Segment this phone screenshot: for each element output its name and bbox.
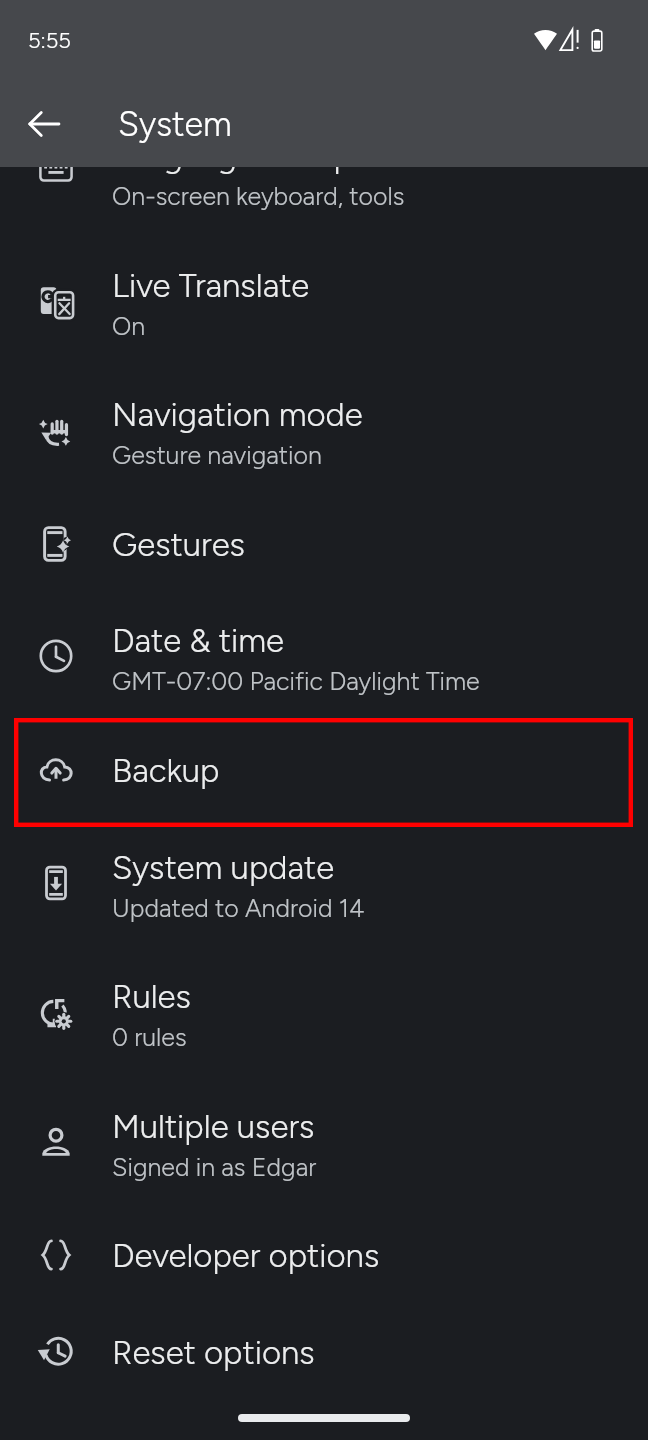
staticText: System update: [112, 846, 335, 888]
staticText: Rules: [112, 975, 191, 1017]
staticText: GMT-07:00 Pacific Daylight Time: [112, 664, 480, 697]
button[interactable]: Backup: [0, 721, 648, 818]
staticText: Updated to Android 14: [112, 891, 365, 924]
button[interactable]: Navigation mode: [0, 365, 648, 495]
staticText: System: [118, 104, 232, 145]
button[interactable]: Developer options: [0, 1206, 648, 1303]
staticText: Reset options: [112, 1331, 315, 1373]
staticText: Developer options: [112, 1234, 380, 1276]
staticText: Gesture navigation: [112, 438, 322, 471]
button[interactable]: Gestures: [0, 495, 648, 592]
staticText: On-screen keyboard, tools: [112, 179, 405, 212]
button[interactable]: Multiple users: [0, 1077, 648, 1207]
button[interactable]: System update: [0, 818, 648, 948]
staticText: Backup: [112, 749, 220, 791]
button[interactable]: Reset options: [0, 1303, 648, 1400]
staticText: On: [112, 309, 146, 342]
staticText: Signed in as Edgar: [112, 1150, 317, 1183]
button[interactable]: Back: [14, 94, 74, 154]
staticText: Navigation mode: [112, 393, 363, 435]
staticText: Date & time: [112, 619, 284, 661]
staticText: Live Translate: [112, 264, 310, 306]
button[interactable]: Rules: [0, 947, 648, 1077]
staticText: 5:55: [28, 27, 71, 53]
staticText: Multiple users: [112, 1105, 315, 1147]
button[interactable]: Date & time: [0, 591, 648, 721]
staticText: Languages & input: [112, 134, 384, 176]
button[interactable]: Languages & input: [0, 106, 648, 236]
button[interactable]: Live Translate: [0, 236, 648, 366]
staticText: Gestures: [112, 523, 245, 565]
staticText: 0 rules: [112, 1020, 187, 1053]
